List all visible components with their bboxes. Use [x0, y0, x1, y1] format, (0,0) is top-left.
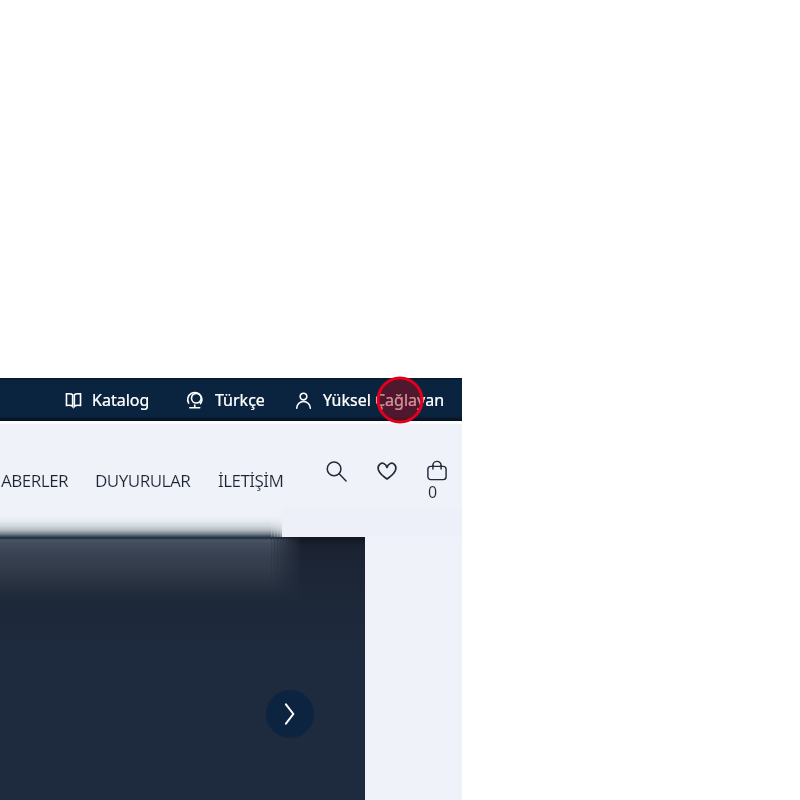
- button[interactable]: Katalog: [64, 389, 150, 411]
- staticText: Yüksel Çağlayan: [323, 389, 445, 411]
- staticText: 0: [428, 481, 438, 503]
- button[interactable]: DUYURULAR: [85, 460, 201, 501]
- button[interactable]: Favourites: [368, 452, 406, 490]
- button[interactable]: HABERLER: [0, 460, 79, 501]
- button[interactable]: İLETİŞİM: [208, 460, 294, 501]
- staticText: İLETİŞİM: [218, 469, 284, 492]
- button[interactable]: Yüksel Çağlayan: [294, 389, 445, 411]
- button[interactable]: Cart: [418, 454, 456, 510]
- button[interactable]: Search: [317, 452, 355, 490]
- button[interactable]: Next slide: [266, 690, 314, 738]
- staticText: Katalog: [92, 389, 150, 411]
- staticText: DUYURULAR: [95, 469, 191, 492]
- staticText: HABERLER: [0, 469, 69, 492]
- staticText: Türkçe: [215, 389, 265, 411]
- button[interactable]: Türkçe: [186, 389, 265, 411]
